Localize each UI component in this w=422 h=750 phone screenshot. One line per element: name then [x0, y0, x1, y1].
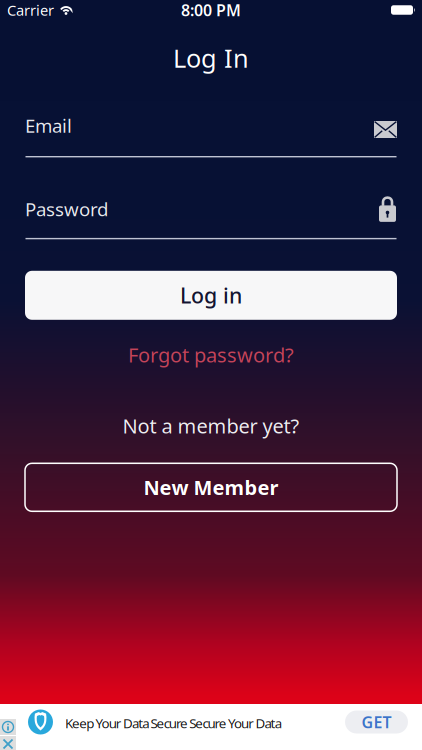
staticText: Password — [25, 196, 108, 221]
button[interactable] — [0, 719, 16, 735]
staticText: GET — [361, 711, 391, 733]
staticText: Log In — [173, 41, 249, 75]
staticText: Carrier — [7, 0, 54, 20]
button[interactable]: Log in — [25, 271, 397, 320]
button[interactable]: Email — [0, 115, 422, 135]
staticText: Email — [25, 113, 72, 138]
button[interactable]: Forgot password? — [128, 344, 294, 366]
staticText: Not a member yet? — [122, 412, 299, 439]
button[interactable] — [0, 736, 16, 750]
staticText: New Member — [143, 474, 278, 501]
button[interactable]: Password — [0, 196, 422, 222]
staticText: Forgot password? — [128, 341, 294, 368]
button[interactable]: GET — [345, 710, 408, 733]
button[interactable] — [0, 709, 53, 734]
button[interactable]: New Member — [25, 463, 397, 511]
staticText: 8:00 PM — [181, 0, 241, 21]
staticText: Log in — [180, 281, 242, 309]
staticText: Keep Your Data Secure Secure Your Data — [65, 714, 282, 732]
